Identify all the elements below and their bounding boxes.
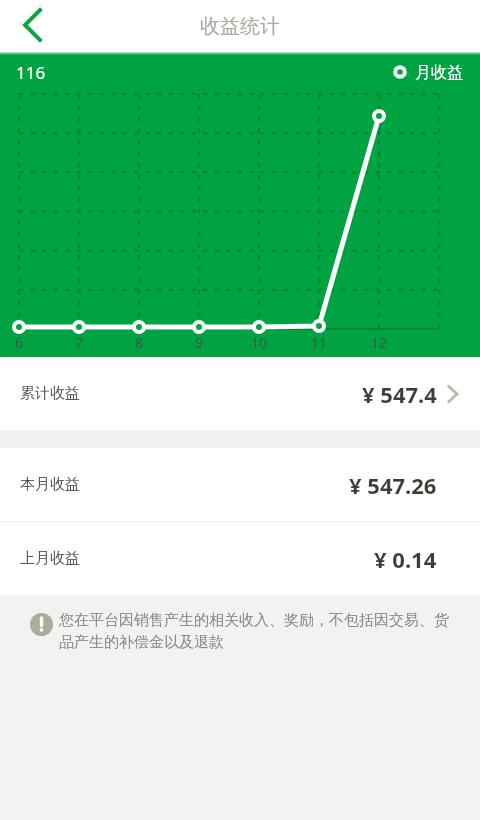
staticText: 10 <box>251 333 268 352</box>
staticText: 6 <box>15 333 24 352</box>
staticText: 12 <box>371 333 388 352</box>
button[interactable]: 累计收益 <box>0 357 480 430</box>
staticText: 8 <box>135 333 144 352</box>
button[interactable]: 上月收益 <box>0 522 480 595</box>
staticText: 9 <box>195 333 204 352</box>
staticText: ¥ 547.26 <box>349 470 437 500</box>
staticText: 收益统计 <box>200 14 280 39</box>
staticText: 本月收益 <box>20 475 80 494</box>
staticText: 上月收益 <box>20 549 80 568</box>
staticText: 累计收益 <box>20 384 80 403</box>
staticText: ¥ 0.14 <box>374 544 437 574</box>
staticText: 月收益 <box>415 63 463 83</box>
staticText: 116 <box>16 61 46 84</box>
staticText: 11 <box>311 333 328 352</box>
button[interactable]: 本月收益 <box>0 448 480 521</box>
staticText: 您在平台因销售产生的相关收入、奖励，不包括因交易、货 品产生的补偿金以及退款 <box>59 611 449 651</box>
button[interactable] <box>0 0 52 52</box>
staticText: ¥ 547.4 <box>362 379 437 409</box>
staticText: 7 <box>75 333 84 352</box>
